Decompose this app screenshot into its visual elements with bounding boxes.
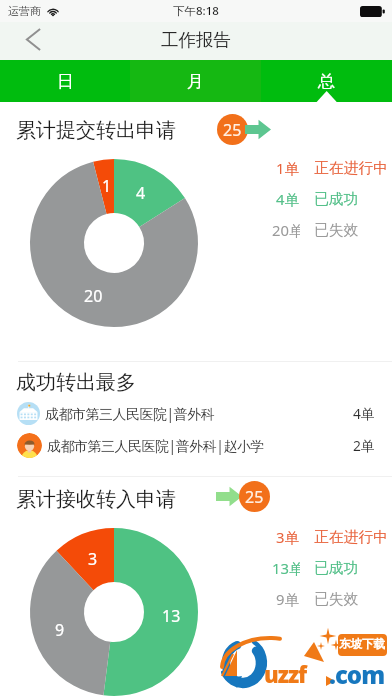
button[interactable]: 25 (217, 114, 248, 145)
staticText: 已失效 (314, 221, 359, 240)
staticText: 20单 (272, 220, 300, 240)
staticText: 累计接收转入申请 (16, 487, 176, 512)
staticText: 下午8:18 (173, 3, 219, 19)
staticText: 月 (187, 71, 204, 92)
staticText: 4单 (276, 189, 300, 209)
staticText: 9单 (276, 589, 300, 609)
button[interactable]: 日 (0, 60, 130, 102)
staticText: 3 (88, 548, 98, 570)
staticText: 4单 (353, 404, 375, 423)
button[interactable]: 月 (130, 60, 261, 102)
staticText: 已成功 (314, 559, 359, 578)
staticText: 9 (55, 619, 65, 641)
staticText: 1 (102, 175, 112, 197)
staticText: 东坡下载 (339, 637, 385, 651)
staticText: 日 (57, 71, 74, 92)
staticText: 成都市第三人民医院|普外科 (45, 404, 215, 423)
button[interactable]: 25 (239, 481, 270, 512)
staticText: 运营商 (8, 4, 41, 18)
staticText: 累计提交转出申请 (16, 118, 176, 143)
staticText: uzzf (264, 659, 307, 689)
button[interactable]: Back (0, 22, 56, 60)
button[interactable]: 成都市第三人民医院|普外科 (0, 399, 392, 427)
staticText: 20 (84, 285, 103, 307)
staticText: 总 (318, 71, 335, 92)
staticText: 25 (245, 486, 264, 508)
staticText: 已成功 (314, 190, 359, 209)
staticText: 正在进行中 (314, 159, 388, 178)
staticText: 1单 (276, 158, 300, 178)
staticText: 25 (223, 119, 242, 141)
staticText: 已失效 (314, 590, 359, 609)
button[interactable]: 成都市第三人民医院|普外科|赵小学 (0, 431, 392, 459)
staticText: 4 (136, 182, 146, 204)
staticText: 正在进行中 (314, 528, 388, 547)
staticText: 3单 (276, 527, 300, 547)
staticText: 工作报告 (161, 29, 231, 51)
staticText: 2单 (353, 436, 375, 455)
staticText: 13单 (272, 558, 300, 578)
staticText: 成都市第三人民医院|普外科|赵小学 (47, 436, 265, 455)
staticText: .com (329, 658, 385, 691)
staticText: 成功转出最多 (16, 370, 136, 395)
staticText: 13 (162, 605, 181, 627)
button[interactable]: 总 (261, 60, 392, 102)
